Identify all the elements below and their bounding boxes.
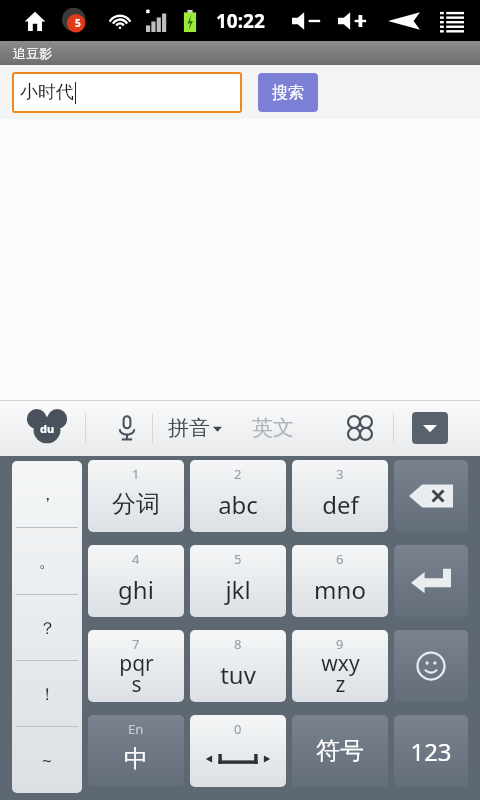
staticText: 1 [132,465,140,483]
button[interactable]: Enter [394,545,468,617]
staticText: 2 [234,465,242,483]
button[interactable]: ， [12,461,82,793]
staticText: 8 [234,635,242,653]
button[interactable]: Space [190,715,286,787]
staticText: 9 [336,635,344,653]
staticText: 3 [336,465,344,483]
button[interactable]: 小时代 [12,72,242,113]
staticText: mno [314,573,366,606]
staticText: ~ [42,749,52,772]
staticText: pqr s [119,649,154,699]
staticText: abc [218,488,258,521]
button[interactable]: 9 [292,630,388,702]
staticText: 4 [132,550,140,568]
staticText: 6 [336,550,344,568]
button[interactable]: 6 [292,545,388,617]
staticText: ？ [39,618,56,639]
staticText: 10:22 [216,8,265,34]
staticText: 5 [75,16,81,30]
button[interactable]: Baidu input method [28,409,66,447]
button[interactable]: Keyboard layout [338,406,382,450]
staticText: En [128,720,144,738]
staticText: tuv [220,658,256,691]
button[interactable]: 搜索 [258,73,318,112]
staticText: 搜索 [272,83,304,103]
button[interactable]: Voice input [105,406,149,450]
staticText: 拼音 [168,415,210,441]
button[interactable]: 123 [394,715,468,787]
staticText: 符号 [316,736,364,766]
staticText: 0 [234,720,242,738]
staticText: 5 [234,550,242,568]
staticText: 追豆影 [13,45,52,61]
button[interactable]: 英文 [252,406,294,450]
staticText: 英文 [252,415,294,441]
button[interactable]: 4 [88,545,184,617]
button[interactable]: 8 [190,630,286,702]
button[interactable]: 7 [88,630,184,702]
staticText: def [322,488,359,521]
button[interactable]: 5 [190,545,286,617]
staticText: ！ [39,684,56,705]
button[interactable]: Delete [394,460,468,532]
button[interactable]: En [88,715,184,787]
staticText: 分词 [112,489,160,519]
staticText: 中 [124,744,148,774]
button[interactable]: Hide keyboard [412,412,448,444]
staticText: ghi [118,573,154,606]
button[interactable]: Emoji [394,630,468,702]
staticText: 7 [132,635,140,653]
staticText: ， [39,484,56,505]
button[interactable]: 符号 [292,715,388,787]
button[interactable]: 拼音 [168,406,222,450]
button[interactable]: 1 [88,460,184,532]
button[interactable]: 2 [190,460,286,532]
staticText: 。 [39,551,56,572]
staticText: 小时代 [20,81,74,104]
staticText: wxy z [321,649,360,699]
staticText: jkl [225,573,251,606]
staticText: du [40,421,55,436]
staticText: 123 [410,735,452,768]
button[interactable]: 3 [292,460,388,532]
